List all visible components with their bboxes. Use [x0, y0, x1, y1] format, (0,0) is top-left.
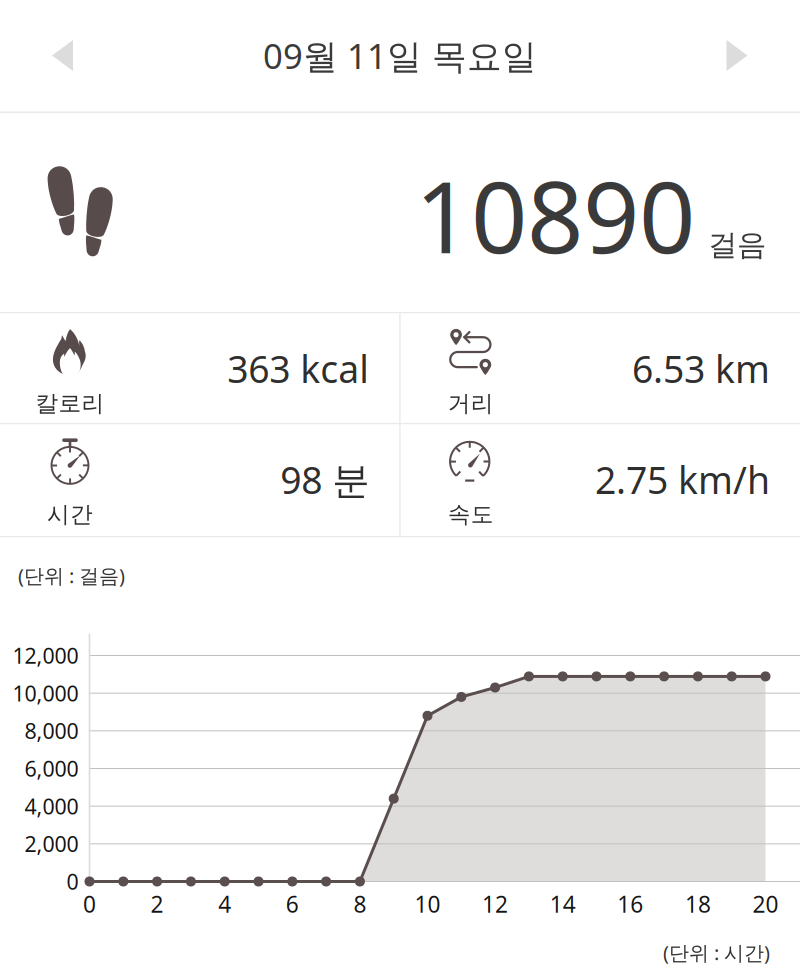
- staticText: 8: [353, 889, 366, 919]
- staticText: 10890: [415, 149, 695, 280]
- staticText: 16: [617, 889, 643, 919]
- staticText: 6,000: [24, 754, 78, 783]
- staticText: 4: [218, 889, 231, 919]
- staticText: 09월 11일 목요일: [263, 32, 537, 78]
- staticText: 4,000: [24, 792, 78, 820]
- staticText: 18: [685, 889, 711, 919]
- staticText: (단위 : 걸음): [18, 562, 125, 589]
- button[interactable]: 시간: [0, 424, 399, 536]
- button[interactable]: 이전 날: [26, 16, 99, 95]
- staticText: 2,000: [24, 830, 78, 858]
- staticText: 14: [550, 889, 576, 919]
- button[interactable]: 다음 날: [700, 16, 773, 95]
- staticText: 10,000: [12, 679, 78, 707]
- staticText: 98 분: [280, 455, 369, 504]
- staticText: 20: [752, 889, 778, 919]
- staticText: 10: [414, 889, 440, 919]
- staticText: 12: [482, 889, 508, 919]
- button[interactable]: 속도: [401, 424, 800, 536]
- staticText: 0: [83, 889, 96, 919]
- button[interactable]: 거리: [401, 313, 800, 423]
- staticText: 12,000: [12, 641, 78, 670]
- staticText: 시간: [47, 501, 93, 528]
- staticText: 속도: [448, 501, 494, 528]
- button[interactable]: 칼로리: [0, 313, 399, 423]
- staticText: 363 kcal: [227, 344, 369, 393]
- staticText: 거리: [448, 390, 494, 417]
- staticText: 6.53 km: [632, 344, 770, 393]
- staticText: 8,000: [24, 717, 78, 745]
- staticText: 2: [151, 889, 164, 919]
- staticText: 칼로리: [35, 390, 104, 417]
- staticText: 2.75 km/h: [595, 455, 770, 504]
- staticText: 0: [66, 867, 78, 896]
- staticText: 걸음: [708, 227, 766, 263]
- staticText: (단위 : 시간): [663, 939, 770, 966]
- staticText: 6: [286, 889, 299, 919]
